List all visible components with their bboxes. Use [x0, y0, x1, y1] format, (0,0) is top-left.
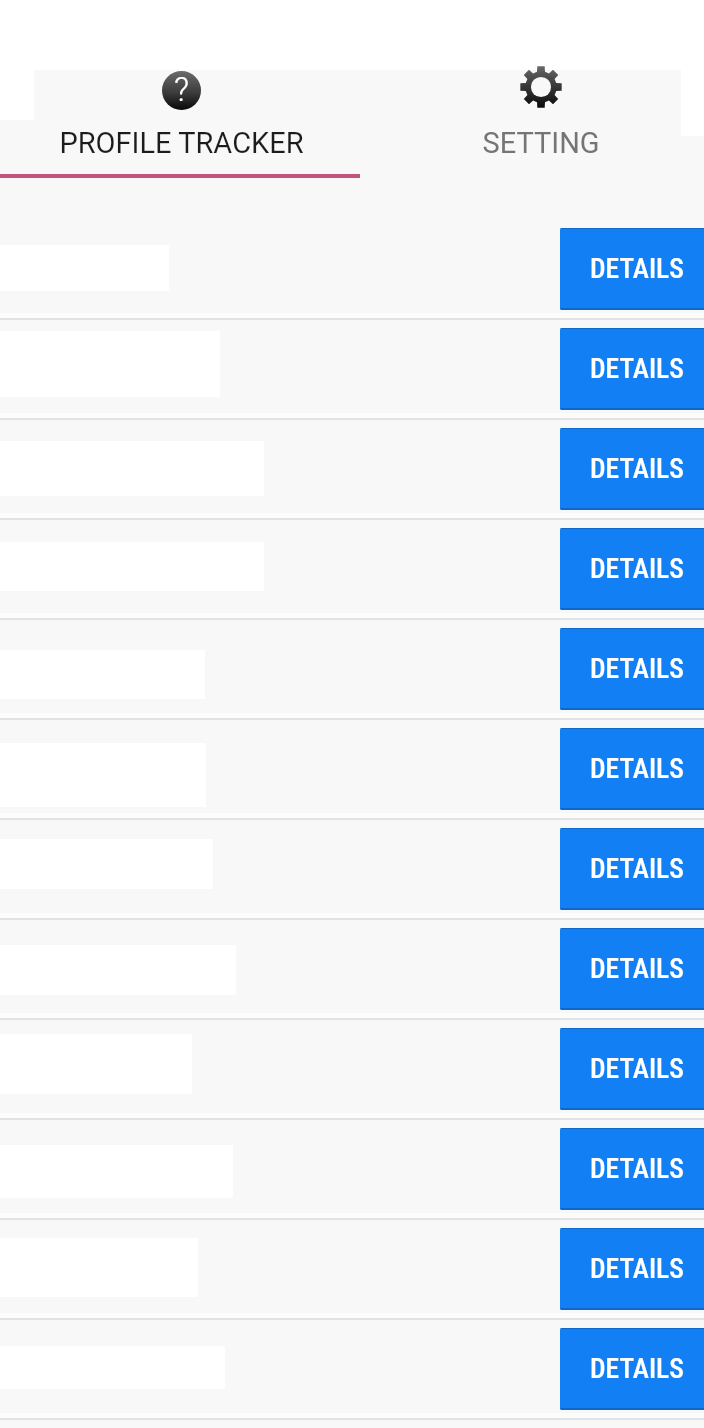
button[interactable]: Settings — [361, 66, 704, 160]
staticText: DETAILS — [590, 752, 684, 784]
button[interactable]: DETAILS — [560, 1328, 704, 1410]
staticText: DETAILS — [590, 852, 684, 884]
staticText: PROFILE TRACKER — [59, 126, 304, 160]
button[interactable]: DETAILS — [560, 1028, 704, 1110]
button[interactable]: DETAILS — [0, 817, 704, 917]
staticText: DETAILS — [590, 952, 684, 984]
button[interactable]: DETAILS — [560, 428, 704, 510]
staticText: DETAILS — [590, 1152, 684, 1184]
button[interactable]: DETAILS — [0, 1317, 704, 1417]
staticText: DETAILS — [590, 1252, 684, 1284]
button[interactable]: Profile tracker — [1, 66, 361, 160]
staticText: DETAILS — [590, 1052, 684, 1084]
button[interactable]: DETAILS — [0, 717, 704, 817]
button[interactable]: DETAILS — [560, 1128, 704, 1210]
button[interactable]: DETAILS — [560, 828, 704, 910]
staticText: DETAILS — [590, 652, 684, 684]
button[interactable]: DETAILS — [560, 628, 704, 710]
staticText: ? — [174, 70, 189, 109]
button[interactable]: DETAILS — [560, 928, 704, 1010]
button[interactable]: DETAILS — [560, 1228, 704, 1310]
button[interactable]: DETAILS — [0, 617, 704, 717]
button[interactable]: DETAILS — [560, 228, 704, 310]
button[interactable]: DETAILS — [560, 528, 704, 610]
button[interactable]: DETAILS — [0, 1217, 704, 1317]
staticText: DETAILS — [590, 452, 684, 484]
button[interactable]: DETAILS — [0, 417, 704, 517]
button[interactable]: DETAILS — [0, 517, 704, 617]
staticText: DETAILS — [590, 352, 684, 384]
staticText: DETAILS — [590, 552, 684, 584]
other: Profile tracker — [158, 67, 204, 113]
staticText: DETAILS — [590, 252, 684, 284]
staticText: SETTING — [482, 126, 600, 160]
button[interactable]: DETAILS — [0, 317, 704, 417]
button[interactable]: DETAILS — [560, 328, 704, 410]
button[interactable]: DETAILS — [560, 728, 704, 810]
button[interactable]: DETAILS — [0, 217, 704, 317]
button[interactable]: DETAILS — [0, 917, 704, 1017]
button[interactable]: DETAILS — [0, 1017, 704, 1117]
button[interactable]: DETAILS — [0, 1117, 704, 1217]
staticText: DETAILS — [590, 1352, 684, 1384]
other: Settings — [518, 67, 564, 113]
